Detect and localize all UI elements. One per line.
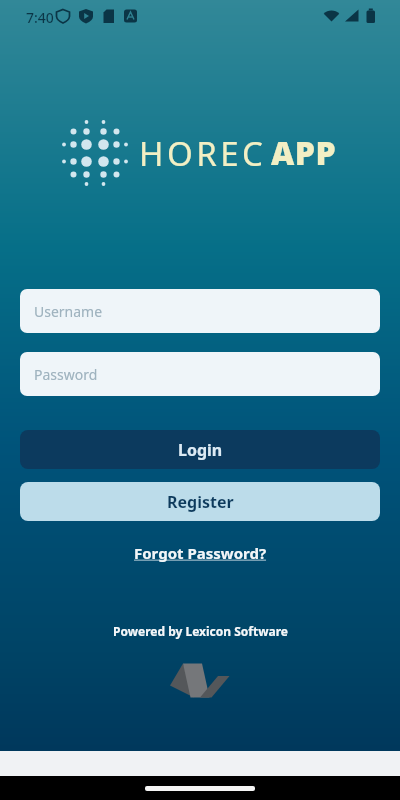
button[interactable]: Password (20, 352, 380, 396)
button[interactable]: Forgot Password? (134, 543, 267, 563)
staticText: Password (34, 365, 98, 384)
staticText: Forgot Password? (134, 543, 267, 563)
staticText: HOREC (139, 131, 267, 176)
staticText: APP (271, 131, 337, 175)
staticText: Login (178, 439, 223, 461)
button[interactable]: Login (20, 430, 380, 469)
button[interactable]: Username (20, 289, 380, 333)
button[interactable]: Register (20, 482, 380, 521)
staticText: Powered by Lexicon Software (113, 623, 288, 639)
staticText: Username (34, 302, 103, 321)
staticText: 7:40 (26, 8, 54, 27)
staticText: Register (167, 491, 234, 513)
